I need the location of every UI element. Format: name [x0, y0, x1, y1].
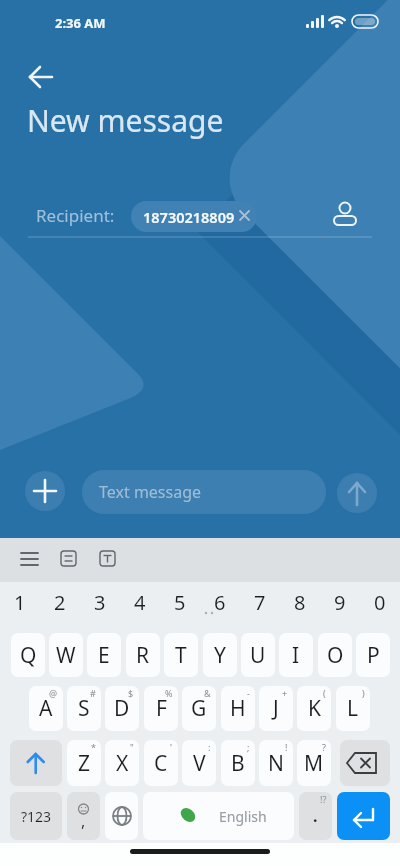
button[interactable]: 18730218809 [131, 201, 257, 232]
staticText: ' [170, 741, 173, 753]
staticText: V [193, 749, 206, 778]
button[interactable] [67, 792, 100, 840]
staticText: " [130, 741, 134, 753]
button[interactable]: C [144, 740, 178, 786]
button[interactable]: 5 [160, 586, 200, 618]
staticText: : [208, 741, 211, 753]
button[interactable]: 0 [360, 586, 400, 618]
staticText: & [204, 687, 211, 699]
button[interactable]: L [336, 686, 370, 731]
button[interactable]: Q [11, 633, 45, 677]
button[interactable]: I [279, 633, 313, 677]
button[interactable]: T [164, 633, 198, 677]
button[interactable] [93, 544, 123, 574]
staticText: ( [323, 687, 326, 699]
staticText: ?123 [21, 807, 52, 826]
button[interactable] [12, 544, 48, 574]
button[interactable]: B [221, 740, 255, 786]
staticText: . [313, 805, 318, 827]
button[interactable]: R [126, 633, 160, 677]
staticText: + [282, 687, 288, 699]
staticText: C [154, 749, 168, 778]
staticText: A [39, 694, 53, 723]
button[interactable]: !? [299, 792, 332, 840]
button[interactable]: 9 [320, 586, 360, 618]
staticText: * [91, 741, 96, 753]
button[interactable]: A [29, 686, 63, 731]
button[interactable] [330, 196, 360, 230]
staticText: R [136, 641, 150, 670]
button[interactable]: V [182, 740, 216, 786]
button[interactable] [10, 740, 62, 786]
button[interactable]: M [297, 740, 331, 786]
staticText: 0 [374, 589, 386, 616]
staticText: U [250, 641, 266, 670]
button[interactable]: ?123 [10, 792, 62, 840]
button[interactable]: K [297, 686, 331, 731]
staticText: 9 [334, 589, 346, 616]
staticText: K [308, 694, 321, 723]
staticText: 6 [214, 589, 226, 616]
staticText: 8 [294, 589, 306, 616]
button[interactable]: 6 [200, 586, 240, 618]
staticText: L [347, 694, 359, 723]
staticText: B [231, 749, 245, 778]
staticText: , [81, 810, 86, 832]
staticText: X [116, 749, 129, 778]
button[interactable]: 1 [0, 586, 40, 618]
staticText: English [219, 807, 267, 826]
staticText: H [230, 694, 246, 723]
staticText: $ [128, 687, 134, 699]
button[interactable]: 7 [240, 586, 280, 618]
button[interactable]: F [144, 686, 178, 731]
button[interactable] [54, 544, 84, 574]
button[interactable]: P [356, 633, 390, 677]
staticText: % [165, 687, 173, 699]
button[interactable]: Z [67, 740, 101, 786]
button[interactable]: 2 [40, 586, 80, 618]
staticText: Z [78, 749, 91, 778]
button[interactable]: D [105, 686, 139, 731]
staticText: F [156, 694, 167, 723]
staticText: G [191, 694, 207, 723]
staticText: W [56, 641, 76, 670]
button[interactable]: S [67, 686, 101, 731]
button[interactable]: 3 [80, 586, 120, 618]
button[interactable]: H [221, 686, 255, 731]
staticText: # [90, 687, 96, 699]
button[interactable] [105, 792, 138, 840]
staticText: 1 [14, 589, 26, 616]
button[interactable]: 8 [280, 586, 320, 618]
button[interactable]: W [49, 633, 83, 677]
staticText: P [367, 641, 380, 670]
button[interactable]: Y [203, 633, 237, 677]
button[interactable] [337, 792, 390, 840]
staticText: - [247, 687, 250, 699]
staticText: ! [285, 741, 288, 753]
button[interactable] [337, 473, 377, 513]
staticText: ? [322, 741, 326, 753]
staticText: 7 [254, 589, 266, 616]
staticText: 18730218809 [143, 207, 235, 227]
staticText: D [114, 694, 130, 723]
staticText: 4 [134, 589, 146, 616]
button[interactable]: G [182, 686, 216, 731]
button[interactable] [340, 740, 390, 786]
staticText: 2:36 AM [55, 14, 106, 32]
staticText: I [292, 641, 300, 670]
button[interactable]: E [87, 633, 121, 677]
button[interactable]: O [318, 633, 352, 677]
button[interactable]: J [259, 686, 293, 731]
button[interactable] [22, 59, 58, 95]
button[interactable]: X [105, 740, 139, 786]
button[interactable] [25, 471, 65, 511]
button[interactable]: N [259, 740, 293, 786]
staticText: 5 [174, 589, 186, 616]
button[interactable]: Text message [82, 470, 326, 514]
staticText: S [78, 694, 90, 723]
button[interactable]: 4 [120, 586, 160, 618]
staticText: ; [247, 741, 250, 753]
button[interactable]: U [241, 633, 275, 677]
staticText: !? [320, 793, 327, 805]
button[interactable] [143, 792, 294, 840]
